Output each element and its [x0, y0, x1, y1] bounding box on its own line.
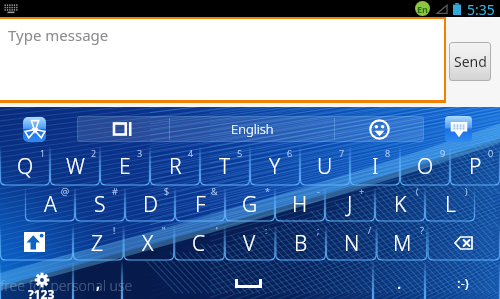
button[interactable]: Q	[0, 147, 50, 185]
staticText: N	[344, 229, 360, 258]
button[interactable]: .	[374, 262, 425, 299]
button[interactable]: G	[225, 188, 275, 221]
staticText: )	[465, 185, 468, 197]
staticText: ;	[317, 224, 320, 236]
button[interactable]: Backspace	[428, 226, 500, 260]
button[interactable]: Send	[449, 42, 491, 81]
staticText: :-)	[457, 274, 469, 292]
button[interactable]: Change layout	[77, 116, 169, 142]
staticText: J	[347, 190, 353, 219]
button[interactable]: B	[275, 226, 326, 260]
button[interactable]: I	[350, 147, 400, 185]
staticText: S	[94, 190, 106, 219]
button[interactable]: F	[175, 188, 225, 221]
staticText: F	[195, 190, 206, 219]
staticText: V	[243, 229, 256, 258]
staticText: '	[216, 224, 218, 236]
staticText: &	[211, 185, 218, 197]
staticText: *	[265, 185, 270, 197]
staticText: E	[119, 152, 131, 181]
button[interactable]: Y	[250, 147, 300, 185]
staticText: $	[164, 185, 170, 197]
button[interactable]: K	[375, 188, 425, 221]
staticText: C	[192, 229, 206, 258]
button[interactable]: X	[122, 226, 173, 260]
button[interactable]: Type message	[0, 19, 444, 100]
button[interactable]: English	[170, 116, 334, 142]
staticText: #	[112, 185, 118, 197]
staticText: 4	[188, 147, 194, 159]
staticText: :	[265, 224, 268, 236]
staticText: 1	[40, 147, 46, 159]
staticText: 6	[287, 147, 293, 159]
staticText: Z	[91, 229, 104, 258]
staticText: X	[142, 229, 154, 258]
staticText: 5:35	[467, 0, 495, 17]
staticText: U	[317, 152, 333, 181]
staticText: 3	[137, 147, 143, 159]
staticText: 8	[385, 147, 391, 159]
staticText: 0	[488, 147, 494, 159]
staticText: !	[113, 224, 116, 236]
staticText: W	[66, 152, 85, 181]
button[interactable]: T	[200, 147, 250, 185]
button[interactable]: R	[150, 147, 200, 185]
button[interactable]: P	[450, 147, 500, 185]
button[interactable]: M	[377, 226, 428, 260]
button[interactable]: J	[325, 188, 375, 221]
button[interactable]: V	[224, 226, 275, 260]
button[interactable]: Shift	[0, 226, 72, 260]
button[interactable]: E	[100, 147, 150, 185]
staticText: free for personal use	[0, 276, 133, 295]
staticText: 2	[91, 147, 97, 159]
staticText: K	[394, 190, 407, 219]
button[interactable]: N	[326, 226, 377, 260]
button[interactable]: :-)	[425, 262, 500, 299]
staticText: ?	[420, 224, 424, 236]
staticText: "	[162, 224, 166, 236]
staticText: I	[372, 152, 379, 181]
staticText: O	[417, 152, 434, 181]
staticText: B	[294, 229, 308, 258]
button[interactable]: W	[50, 147, 100, 185]
staticText: P	[469, 152, 482, 181]
staticText: (	[416, 185, 419, 197]
button[interactable]: S	[75, 188, 125, 221]
staticText: +	[359, 185, 365, 197]
staticText: 7	[339, 147, 345, 159]
button[interactable]: Voice input	[23, 117, 46, 142]
staticText: English	[231, 120, 274, 138]
staticText: A	[44, 190, 57, 219]
staticText: ,	[96, 272, 101, 294]
staticText: M	[393, 229, 412, 258]
button[interactable]: L	[425, 188, 475, 221]
button[interactable]: Emoji	[335, 116, 424, 142]
staticText: Y	[269, 152, 281, 181]
button[interactable]: U	[300, 147, 350, 185]
staticText: @	[61, 185, 69, 197]
staticText: Type message	[8, 25, 109, 45]
button[interactable]: ?123	[0, 262, 74, 299]
staticText: 9	[440, 147, 446, 159]
button[interactable]: A	[25, 188, 75, 221]
staticText: 5	[237, 147, 243, 159]
staticText: R	[169, 152, 182, 181]
button[interactable]: H	[275, 188, 325, 221]
staticText: -	[317, 185, 320, 197]
staticText: /	[368, 224, 372, 236]
button[interactable]: Hide keyboard	[445, 116, 472, 142]
button[interactable]: O	[400, 147, 450, 185]
button[interactable]: ,	[74, 262, 122, 299]
button[interactable]: Space	[122, 262, 374, 299]
staticText: G	[242, 190, 258, 219]
button[interactable]: C	[173, 226, 224, 260]
button[interactable]: Z	[72, 226, 122, 260]
staticText: Q	[17, 152, 34, 181]
staticText: T	[219, 152, 231, 181]
staticText: L	[445, 190, 456, 219]
staticText: ?123	[28, 286, 55, 299]
button[interactable]: D	[125, 188, 175, 221]
staticText: En	[417, 3, 428, 15]
staticText: H	[292, 190, 308, 219]
staticText: .	[397, 272, 402, 294]
